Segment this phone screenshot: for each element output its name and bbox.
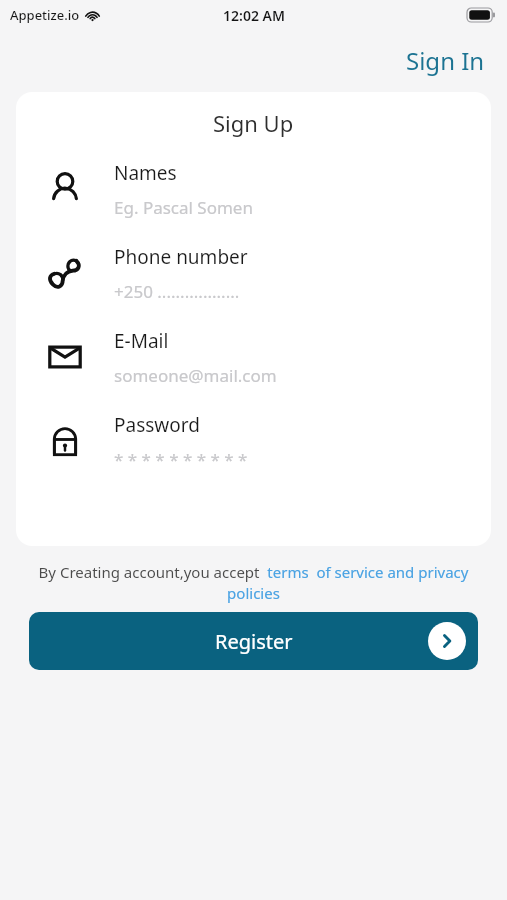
staticText: Phone number: [114, 244, 248, 270]
staticText: Names: [114, 160, 177, 186]
other: Password: [46, 422, 84, 460]
button[interactable]: By Creating account,you accept terms of …: [24, 562, 483, 604]
staticText: * * * * * * * * * *: [114, 448, 248, 471]
other: Name: [46, 170, 84, 208]
staticText: E-Mail: [114, 328, 169, 354]
staticText: Register: [215, 628, 293, 655]
staticText: Appetize.io: [10, 6, 80, 24]
other: Phone number: [46, 254, 84, 292]
button[interactable]: E-Mail: [16, 326, 491, 388]
staticText: someone@mail.com: [114, 364, 277, 387]
other: E-Mail: [46, 338, 84, 376]
button[interactable]: Phone number: [16, 242, 491, 304]
staticText: 12:02 AM: [223, 6, 285, 25]
staticText: By Creating account,you accept terms of …: [24, 562, 483, 604]
button[interactable]: Sign In: [406, 44, 485, 77]
staticText: Sign Up: [213, 108, 294, 138]
staticText: Sign In: [406, 44, 485, 77]
staticText: Eg. Pascal Somen: [114, 196, 253, 219]
button[interactable]: Name: [16, 158, 491, 220]
button[interactable]: Password: [16, 410, 491, 472]
staticText: Password: [114, 412, 200, 438]
staticText: +250 ..................: [114, 280, 240, 303]
button[interactable]: Register: [29, 612, 478, 670]
